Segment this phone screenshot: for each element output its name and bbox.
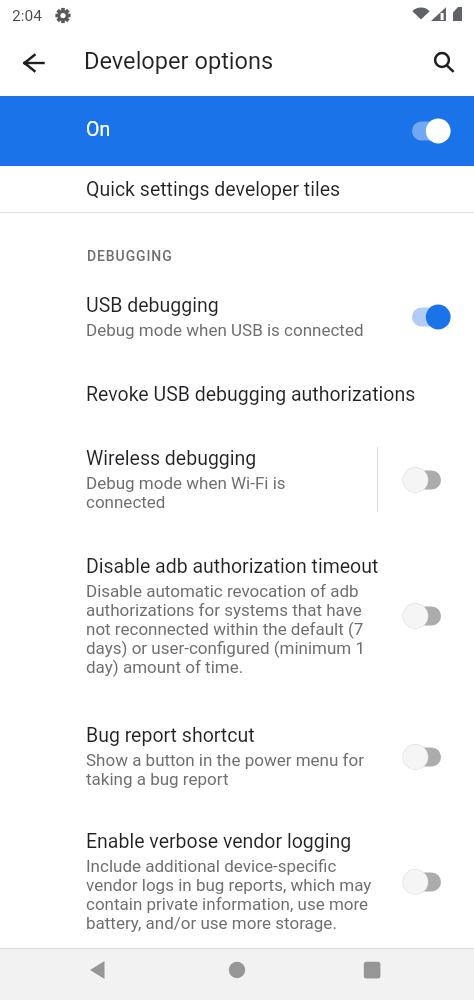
staticText: Revoke USB debugging authorizations (86, 383, 416, 406)
button[interactable] (433, 52, 457, 76)
staticText: Quick settings developer tiles (86, 178, 341, 201)
button[interactable] (362, 960, 382, 980)
staticText: Debug mode when USB is connected (86, 320, 364, 340)
staticText: DEBUGGING (87, 248, 173, 264)
staticText: Bug report shortcut (86, 724, 255, 747)
button[interactable]: USB debugging (0, 277, 474, 362)
button[interactable]: Wireless debugging (0, 427, 474, 534)
button[interactable] (24, 52, 46, 74)
staticText: Include additional device-specific vendo… (86, 856, 372, 933)
button[interactable]: Bug report shortcut (0, 702, 474, 810)
button[interactable]: Quick settings developer tiles (0, 166, 474, 212)
staticText: Disable automatic revocation of adb auth… (86, 581, 366, 677)
staticText: Developer options (84, 47, 274, 75)
button[interactable] (227, 960, 247, 980)
staticText: 2:04 (12, 7, 42, 25)
staticText: Debug mode when Wi-Fi is connected (86, 473, 286, 512)
button[interactable]: Revoke USB debugging authorizations (0, 362, 474, 427)
staticText: Disable adb authorization timeout (86, 555, 379, 578)
staticText: Show a button in the power menu for taki… (86, 750, 364, 789)
button[interactable]: On (0, 96, 474, 166)
button[interactable]: Enable verbose vendor logging (0, 810, 474, 950)
staticText: Wireless debugging (86, 447, 257, 470)
staticText: Enable verbose vendor logging (86, 830, 352, 853)
staticText: USB debugging (86, 294, 219, 317)
staticText: On (86, 118, 111, 141)
button[interactable] (87, 960, 107, 980)
button[interactable]: Disable adb authorization timeout (0, 534, 474, 702)
